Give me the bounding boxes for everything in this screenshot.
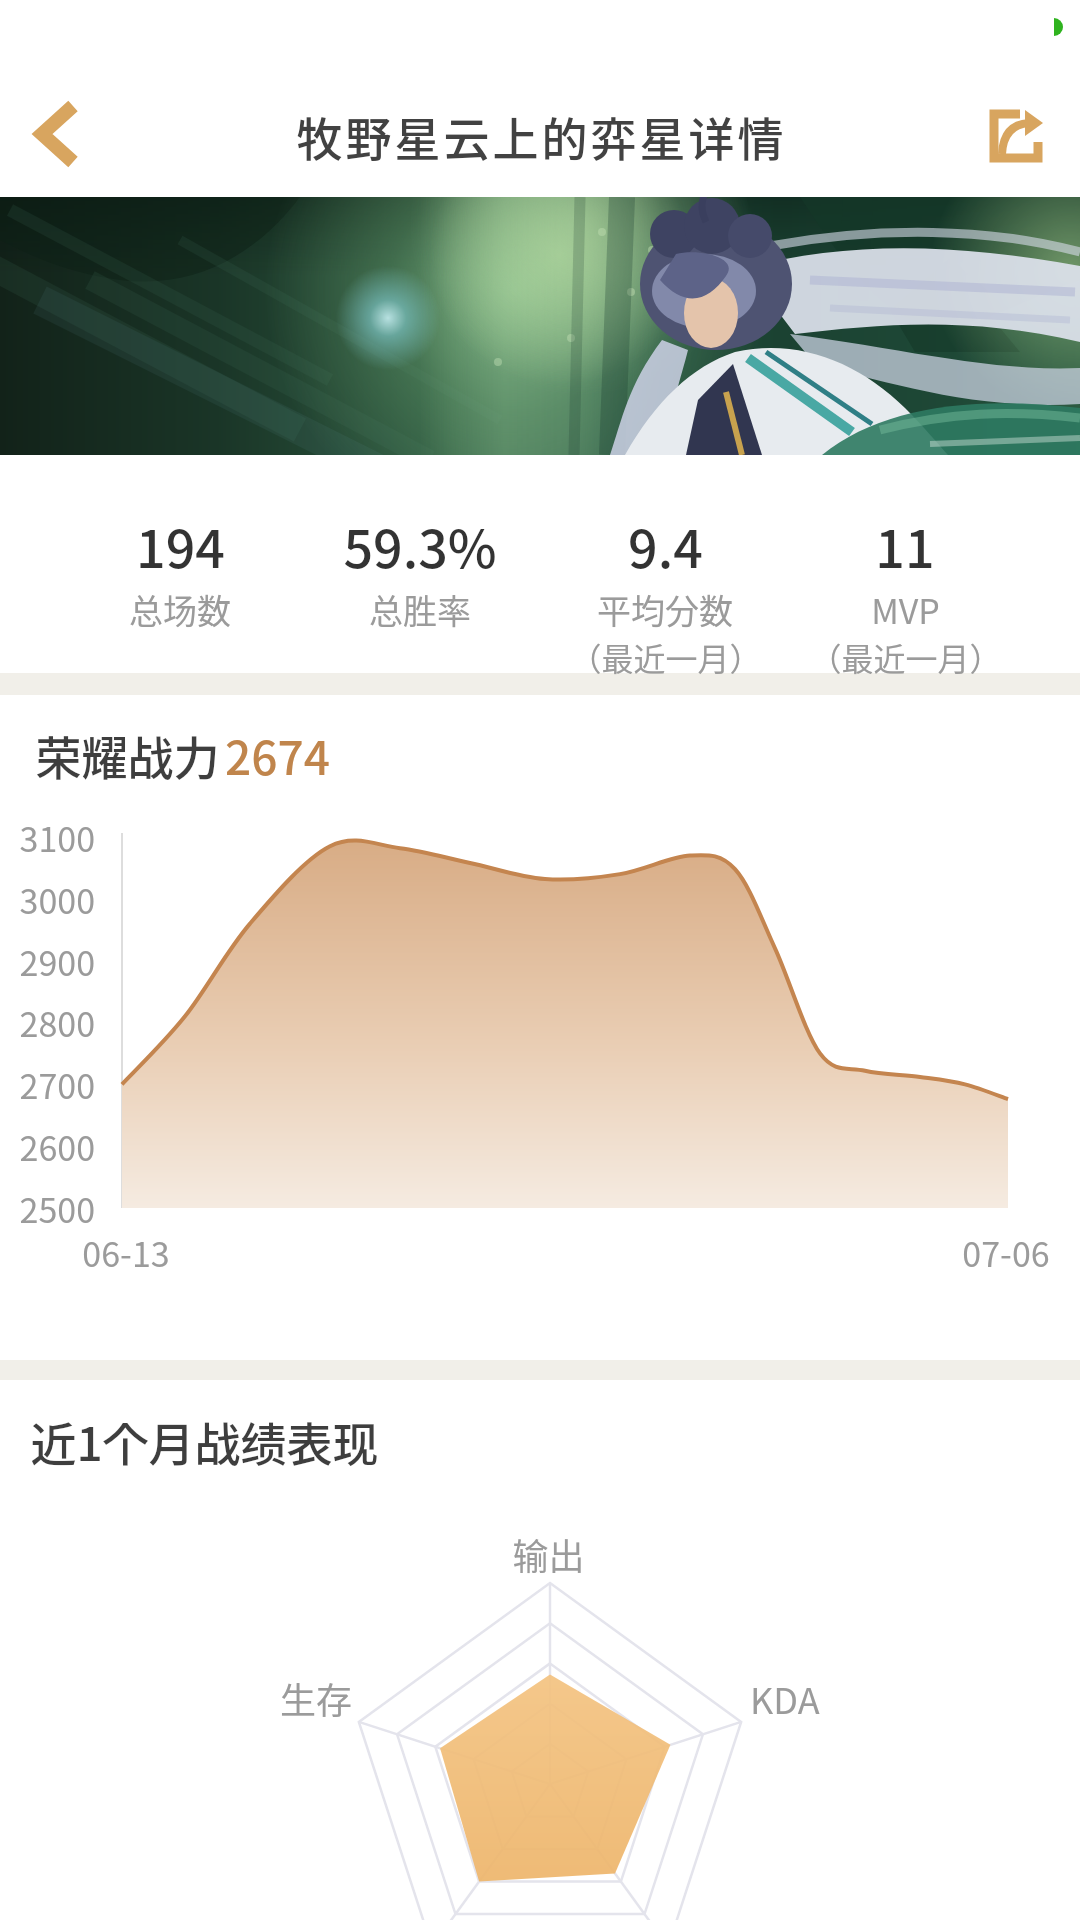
- staticText: 总胜率: [369, 585, 471, 634]
- staticText: 06-13: [82, 1228, 170, 1277]
- staticText: 194: [136, 508, 225, 583]
- staticText: 生存: [279, 1672, 352, 1724]
- staticText: 07-06: [962, 1228, 1050, 1277]
- button[interactable]: [20, 90, 110, 180]
- staticText: 荣耀战力: [30, 722, 225, 789]
- staticText: 3000: [19, 875, 95, 924]
- staticText: 平均分数: [597, 585, 733, 634]
- staticText: 2900: [19, 937, 95, 986]
- staticText: 3100: [19, 813, 95, 862]
- staticText: 2700: [19, 1060, 95, 1109]
- staticText: 11: [875, 508, 935, 583]
- button[interactable]: [975, 98, 1055, 178]
- staticText: 59.3%: [343, 508, 497, 583]
- staticText: 9.4: [628, 508, 703, 583]
- staticText: 输出: [512, 1528, 585, 1580]
- staticText: 2500: [19, 1184, 95, 1233]
- staticText: 近1个月战绩表现: [30, 1408, 379, 1475]
- staticText: （最近一月）: [809, 634, 1002, 680]
- staticText: 2600: [19, 1122, 95, 1171]
- staticText: 牧野星云上的弈星详情: [295, 103, 785, 170]
- staticText: （最近一月）: [569, 634, 762, 680]
- staticText: KDA: [750, 1672, 820, 1724]
- staticText: MVP: [871, 585, 940, 634]
- staticText: 总场数: [129, 585, 231, 634]
- staticText: 2800: [19, 998, 95, 1047]
- staticText: 2674: [225, 722, 330, 789]
